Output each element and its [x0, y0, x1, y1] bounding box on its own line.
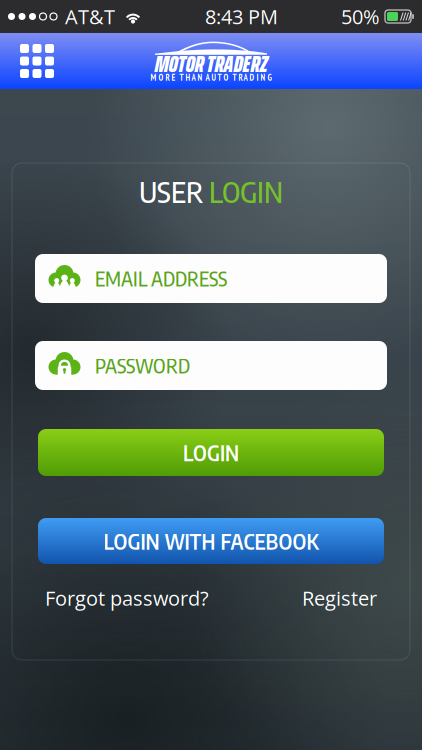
- button[interactable]: LOGIN: [38, 429, 384, 476]
- staticText: 50%: [341, 3, 380, 30]
- staticText: Forgot password?: [45, 584, 209, 612]
- staticText: AT&T: [65, 3, 115, 30]
- button[interactable]: EMAIL ADDRESS: [35, 254, 387, 303]
- staticText: M O R E T H A N A U T O T R A D I N G: [150, 72, 271, 83]
- staticText: LOGIN: [209, 173, 283, 209]
- staticText: PASSWORD: [95, 353, 190, 378]
- button[interactable]: Menu: [0, 33, 74, 89]
- button[interactable]: PASSWORD: [35, 341, 387, 390]
- staticText: USER: [139, 173, 209, 209]
- staticText: 8:43 PM: [205, 3, 278, 30]
- staticText: MOTOR TRADERZ: [154, 46, 267, 82]
- staticText: EMAIL ADDRESS: [95, 266, 227, 291]
- staticText: LOGIN: [183, 439, 239, 466]
- button[interactable]: Register: [302, 584, 377, 612]
- button[interactable]: Forgot password?: [45, 584, 209, 612]
- staticText: Register: [302, 584, 377, 612]
- button[interactable]: LOGIN WITH FACEBOOK: [38, 518, 384, 564]
- staticText: LOGIN WITH FACEBOOK: [103, 528, 318, 554]
